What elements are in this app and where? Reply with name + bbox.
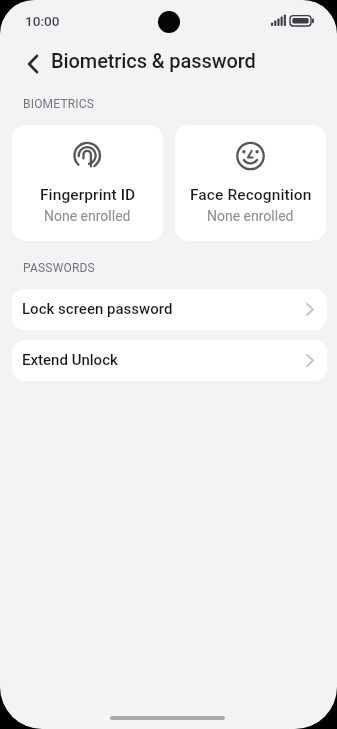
button[interactable]: Face Recognition <box>175 125 326 241</box>
button[interactable]: Lock screen password <box>12 289 327 330</box>
staticText: None enrolled <box>207 208 294 224</box>
button[interactable]: Fingerprint ID <box>12 125 163 241</box>
staticText: Fingerprint ID <box>40 186 136 204</box>
staticText: Extend Unlock <box>22 351 118 369</box>
staticText: PASSWORDS <box>23 261 95 275</box>
staticText: BIOMETRICS <box>23 97 95 111</box>
staticText: Face Recognition <box>190 186 312 204</box>
staticText: Lock screen password <box>22 300 173 318</box>
button[interactable]: Extend Unlock <box>12 340 327 381</box>
staticText: 10:00 <box>25 13 60 29</box>
staticText: Biometrics & password <box>51 49 256 72</box>
staticText: None enrolled <box>44 208 131 224</box>
button[interactable] <box>18 50 48 78</box>
